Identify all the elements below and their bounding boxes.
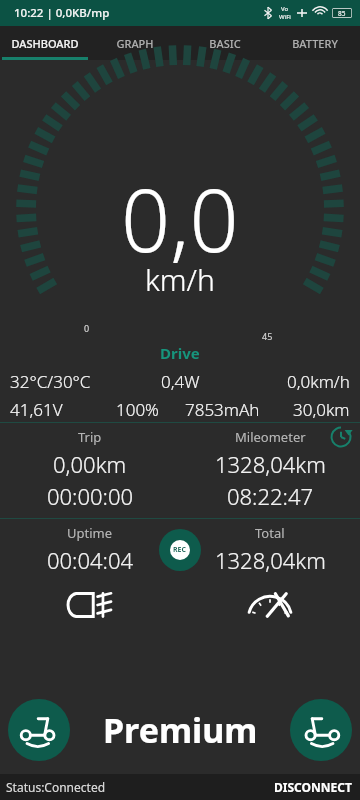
staticText: 00:04:04 [47, 545, 134, 575]
button[interactable]: Scooter right [290, 699, 352, 761]
button[interactable]: 7853mAh [180, 396, 265, 422]
staticText: 0,00km [53, 449, 127, 479]
button[interactable]: BASIC [180, 26, 270, 60]
staticText: 10:22 | 0,0KB/mp [14, 5, 110, 21]
staticText: 00:00:00 [47, 481, 134, 511]
staticText: 0 [84, 322, 90, 334]
button[interactable]: Record [159, 529, 201, 571]
staticText: Uptime [67, 524, 113, 542]
staticText: REC [173, 545, 187, 555]
button[interactable]: 41,61V [10, 396, 95, 422]
button[interactable]: 32°C/30°C [10, 368, 124, 394]
button[interactable]: 30,0km [265, 396, 350, 422]
staticText: BATTERY [292, 36, 338, 51]
staticText: 45 [262, 330, 273, 342]
staticText: Mileometer [235, 428, 306, 446]
staticText: Status:Connected [6, 779, 106, 795]
button[interactable]: Mileometer [180, 423, 360, 511]
staticText: 41,61V [10, 398, 63, 421]
staticText: Total [255, 524, 285, 542]
button[interactable]: Scooter left [8, 699, 70, 761]
staticText: 85 [338, 9, 346, 18]
staticText: DISCONNECT [274, 779, 352, 795]
staticText: 1328,04km [215, 545, 326, 575]
staticText: km/h [145, 259, 215, 300]
button[interactable]: History [330, 426, 352, 448]
button[interactable]: 100% [95, 396, 180, 422]
button[interactable]: Total [180, 519, 360, 575]
button[interactable]: 0,0km/h [237, 368, 350, 394]
staticText: Vo [281, 5, 289, 13]
staticText: 32°C/30°C [10, 370, 91, 393]
staticText: 0,4W [161, 370, 200, 393]
staticText: 7853mAh [185, 398, 260, 421]
staticText: 1328,04km [215, 449, 326, 479]
staticText: DASHBOARD [11, 36, 79, 51]
staticText: BASIC [209, 36, 241, 51]
staticText: WiFi [279, 13, 291, 21]
button[interactable]: Cruise control off [180, 577, 360, 633]
button[interactable]: DASHBOARD [0, 26, 90, 60]
button[interactable]: Uptime [0, 519, 180, 575]
button[interactable]: DISCONNECT [266, 774, 360, 800]
button[interactable]: BATTERY [270, 26, 360, 60]
button[interactable]: Trip [0, 423, 180, 511]
staticText: Trip [78, 428, 102, 446]
button[interactable]: GRAPH [90, 26, 180, 60]
button[interactable]: Headlight [0, 577, 180, 633]
staticText: 30,0km [293, 398, 350, 421]
staticText: 100% [116, 398, 159, 421]
staticText: 08:22:47 [227, 481, 314, 511]
button[interactable]: 0,4W [124, 368, 237, 394]
staticText: 0,0km/h [287, 370, 350, 393]
staticText: 0,0 [121, 160, 239, 277]
staticText: GRAPH [116, 36, 154, 51]
staticText: Drive [160, 343, 200, 363]
staticText: Premium [103, 707, 258, 753]
